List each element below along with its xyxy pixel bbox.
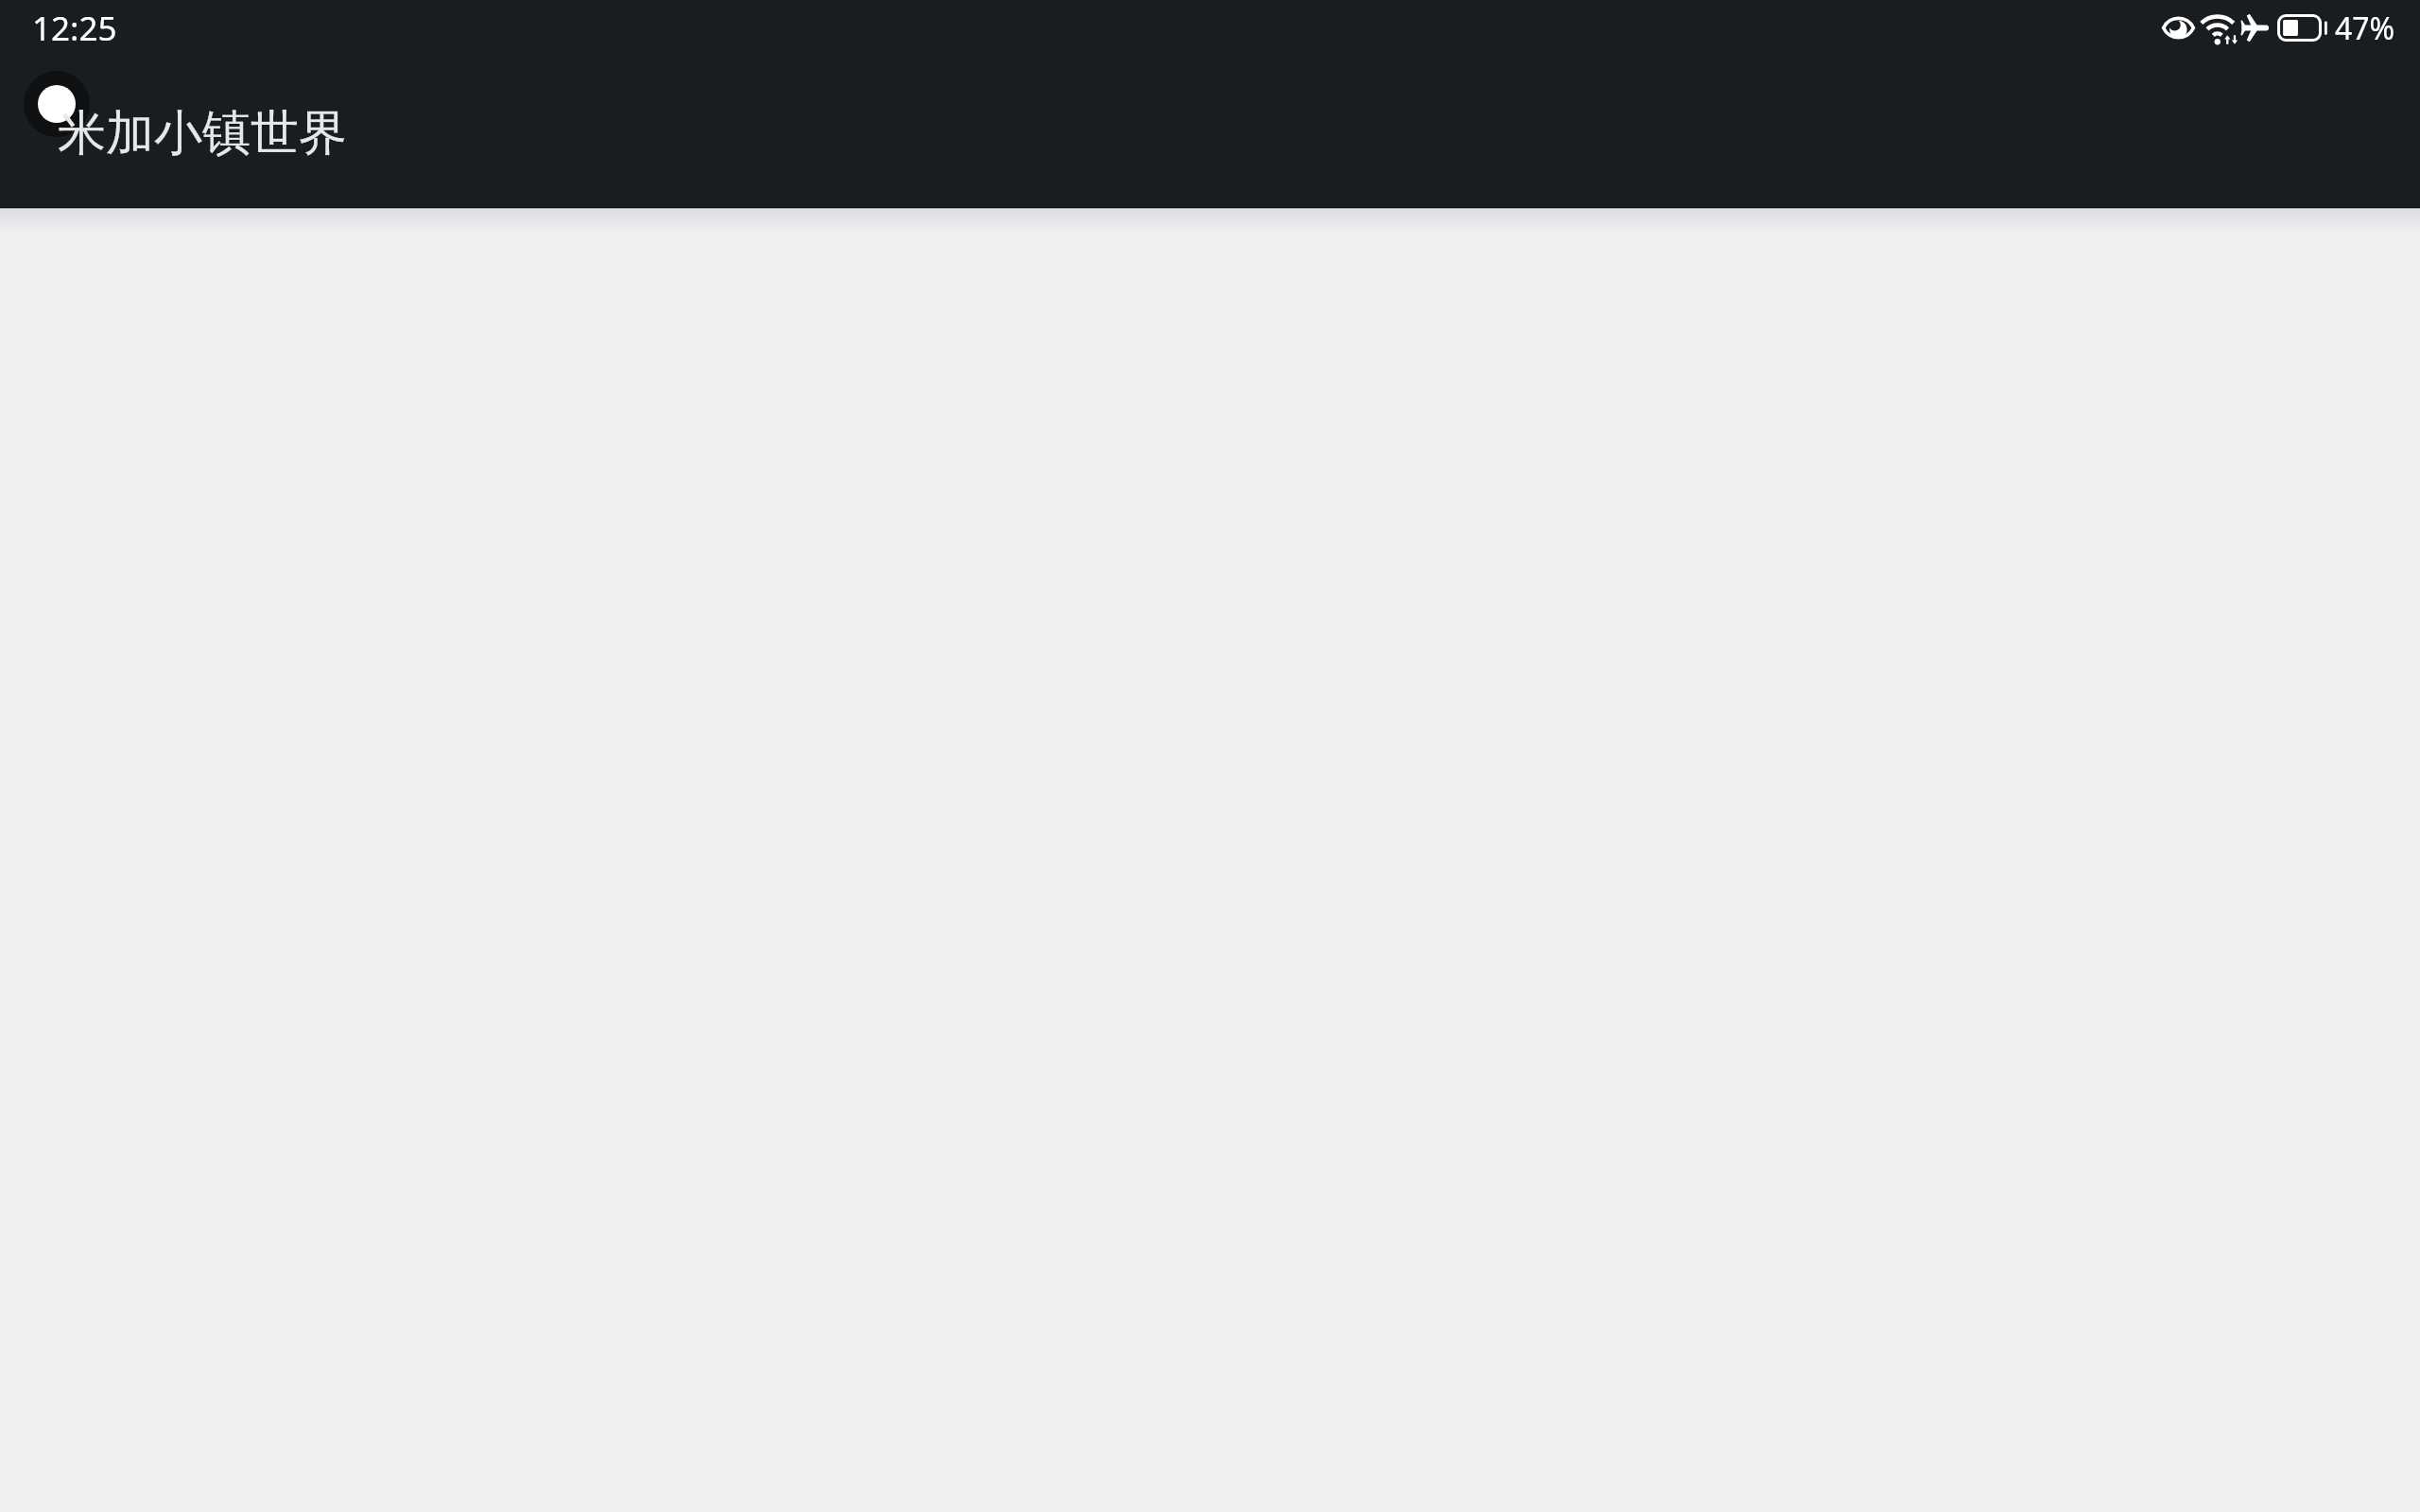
button[interactable]: Eye comfort mode	[2162, 16, 2195, 40]
staticText: 12:25	[32, 6, 117, 51]
button[interactable]: Airplane mode on	[2240, 13, 2270, 43]
staticText: 47%	[2335, 8, 2395, 49]
button[interactable]: Battery 47 percent	[2277, 14, 2328, 42]
button[interactable]: Wi-Fi connected	[2203, 14, 2236, 43]
button[interactable]: 米加小镇世界	[58, 103, 347, 163]
button[interactable]: Loading	[24, 71, 90, 137]
